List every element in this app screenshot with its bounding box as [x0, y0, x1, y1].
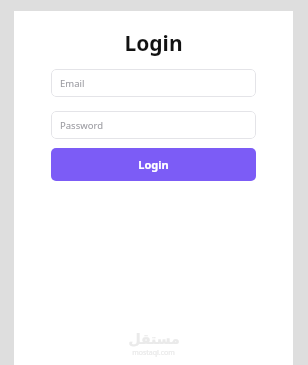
button[interactable]: Email: [51, 69, 256, 97]
button[interactable]: Login: [51, 148, 256, 181]
staticText: mostaql.com: [132, 348, 175, 358]
staticText: Email: [60, 77, 85, 90]
staticText: Login: [124, 29, 183, 58]
staticText: Login: [138, 157, 169, 172]
other: mostaql.com watermark: [14, 331, 293, 358]
button[interactable]: Password: [51, 111, 256, 139]
staticText: Password: [60, 119, 103, 132]
staticText: مستقل: [128, 331, 180, 347]
